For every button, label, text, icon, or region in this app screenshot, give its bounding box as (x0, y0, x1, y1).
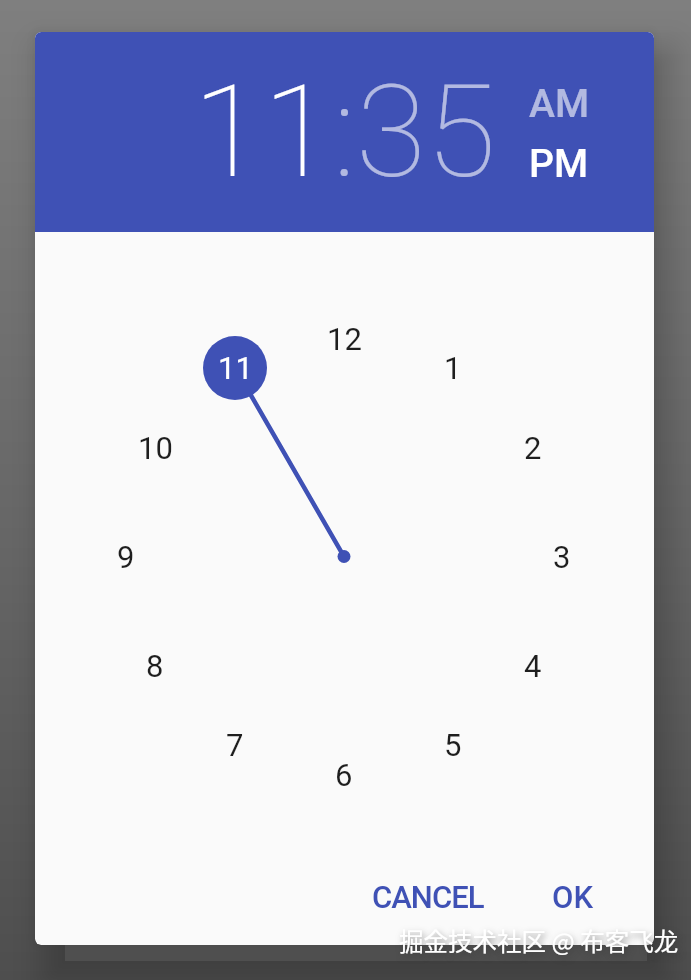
button[interactable]: CANCEL (358, 873, 498, 921)
staticText: 2 (524, 430, 542, 466)
button[interactable]: 6 (312, 743, 376, 807)
button[interactable]: PM (509, 141, 609, 181)
staticText: 1 (444, 350, 462, 386)
button[interactable]: 2 (501, 416, 565, 480)
staticText: 11:35 (193, 57, 496, 207)
staticText: 8 (146, 648, 164, 684)
button[interactable]: 3 (530, 525, 594, 589)
staticText: 11 (218, 350, 253, 386)
staticText: AM (529, 81, 590, 121)
button[interactable]: 10 (123, 416, 187, 480)
staticText: 3 (553, 539, 571, 575)
staticText: 6 (335, 757, 353, 793)
staticText: 4 (524, 648, 542, 684)
button[interactable]: 8 (123, 634, 187, 698)
button[interactable]: 7 (203, 713, 267, 777)
staticText: 掘金技术社区 @ 布客飞龙 (399, 923, 679, 958)
button[interactable]: 11 (203, 336, 267, 400)
button[interactable]: OK (532, 873, 612, 921)
button[interactable]: 12 (312, 307, 376, 371)
staticText: 5 (444, 727, 462, 763)
button[interactable]: AM (509, 81, 609, 121)
staticText: 9 (117, 539, 135, 575)
button[interactable]: 4 (501, 634, 565, 698)
button[interactable]: 9 (94, 525, 158, 589)
staticText: 10 (138, 430, 173, 466)
staticText: PM (529, 141, 589, 181)
staticText: OK (552, 879, 593, 915)
button[interactable]: 5 (421, 713, 485, 777)
staticText: CANCEL (372, 879, 484, 915)
staticText: 7 (226, 727, 244, 763)
button[interactable]: 1 (421, 336, 485, 400)
staticText: 12 (327, 321, 362, 357)
